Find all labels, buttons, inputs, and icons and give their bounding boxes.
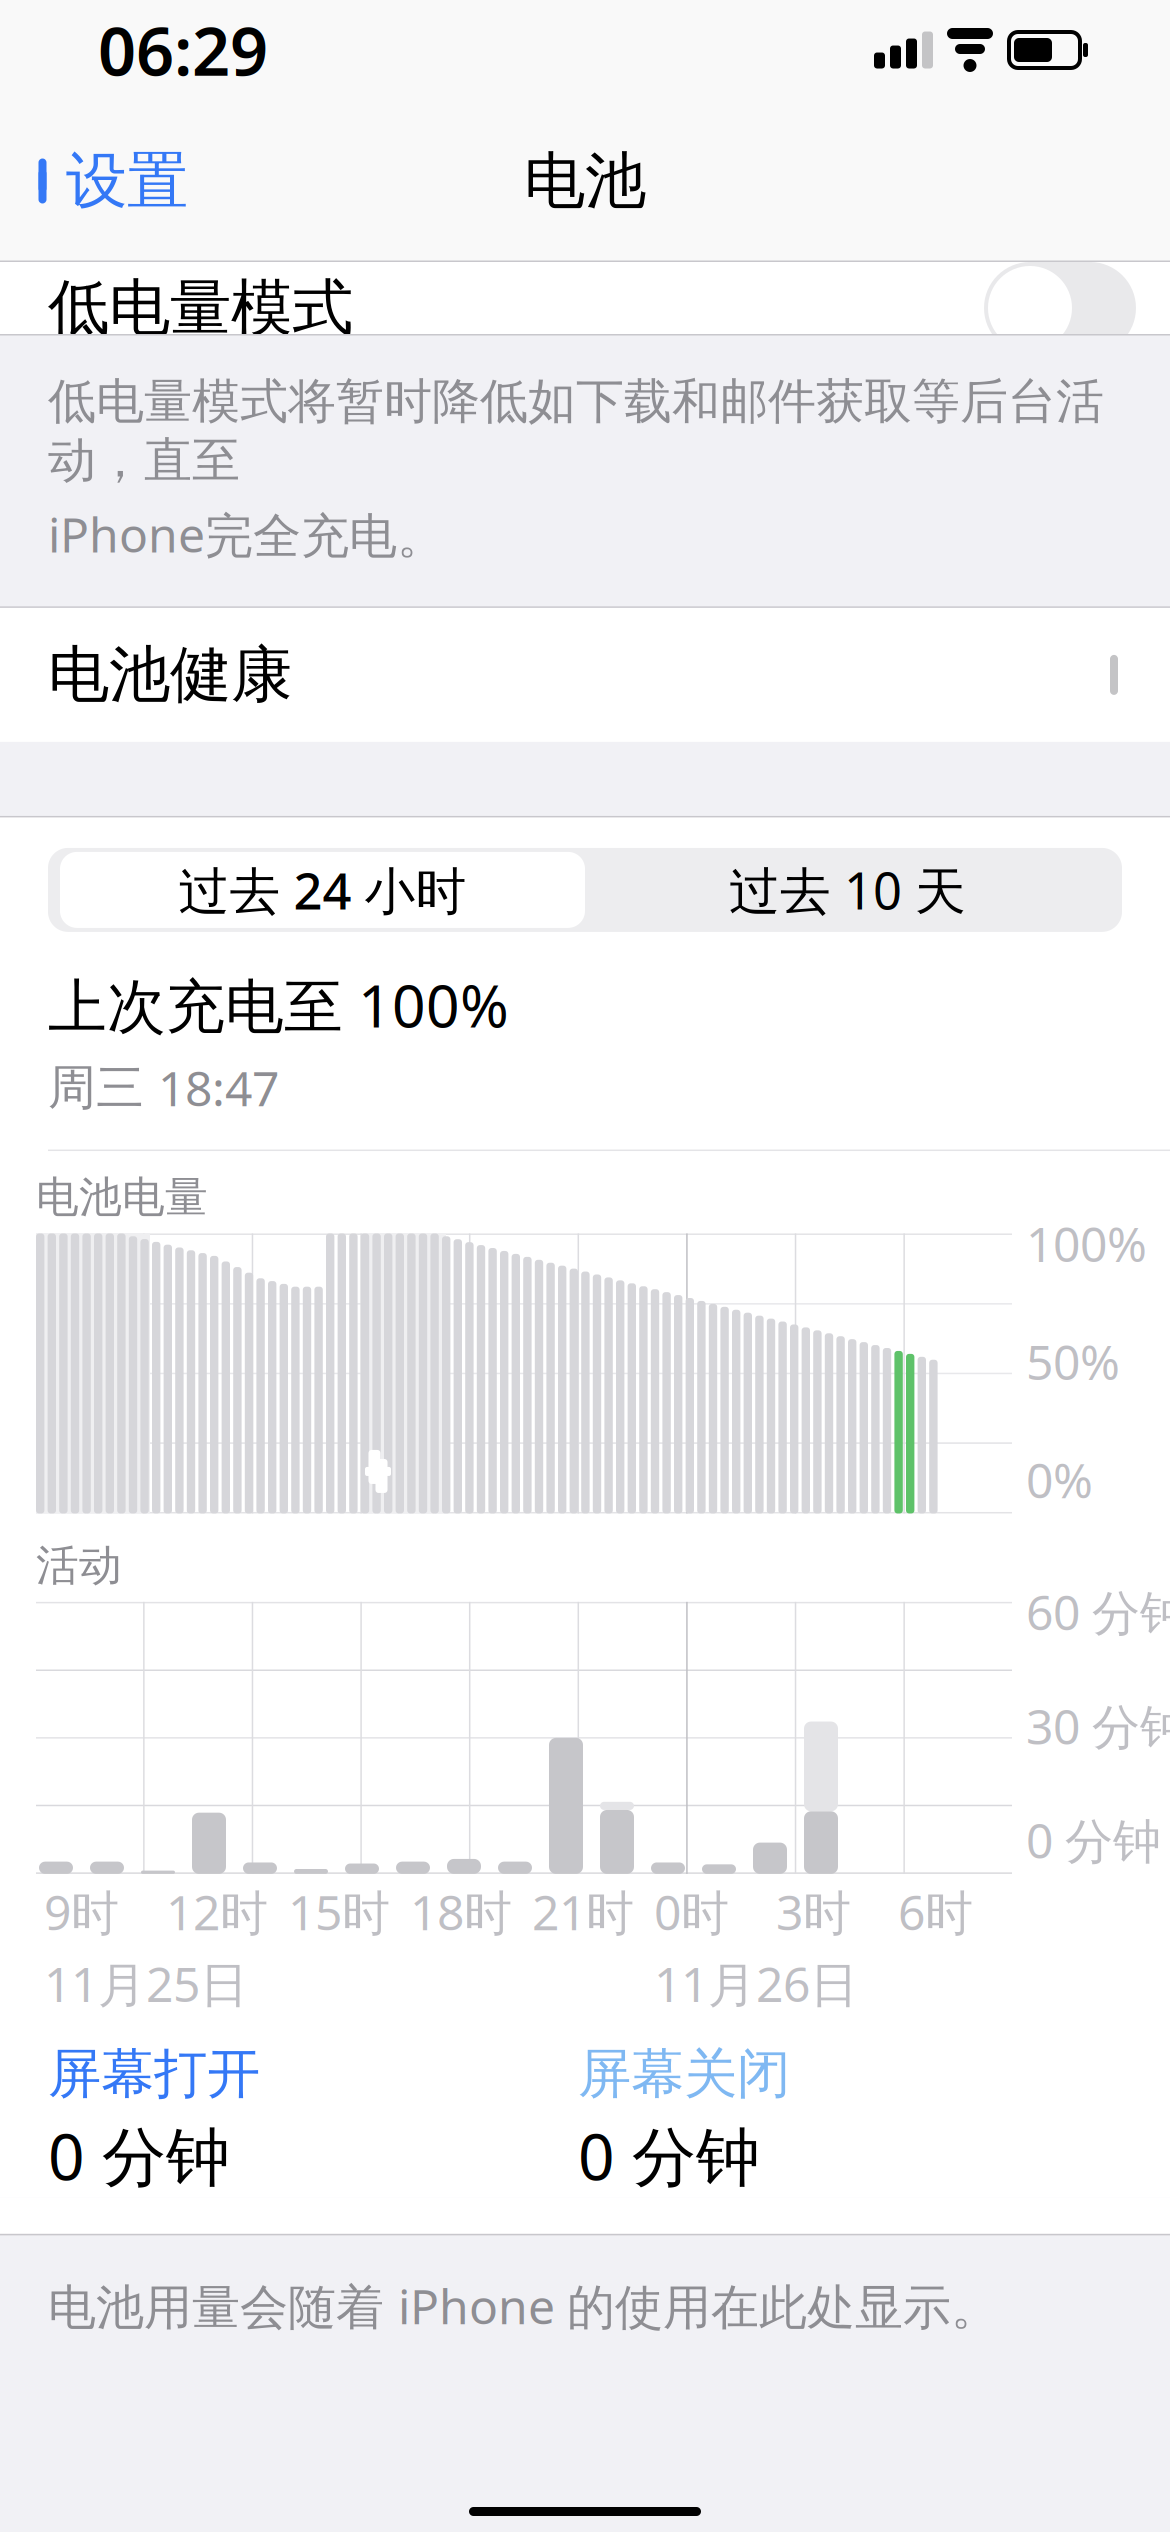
- staticText: 上次充电至 100%: [48, 966, 509, 1044]
- staticText: 屏幕关闭: [578, 2041, 790, 2107]
- staticText: 0时: [654, 1880, 729, 1944]
- staticText: 过去 24 小时: [178, 856, 466, 924]
- staticText: 9时: [44, 1880, 119, 1944]
- staticText: 06:29: [98, 6, 268, 94]
- staticText: iPhone完全充电。: [48, 502, 445, 566]
- staticText: 60 分钟: [1026, 1580, 1170, 1644]
- staticText: 11月25日: [44, 1952, 248, 2015]
- button[interactable]: 低电量模式: [0, 262, 1170, 334]
- staticText: 18:47: [158, 1056, 279, 1119]
- staticText: 屏幕打开: [48, 2041, 260, 2107]
- staticText: 电池电量: [36, 1171, 208, 1223]
- staticText: 21时: [532, 1880, 634, 1944]
- staticText: 0 分钟: [1026, 1808, 1161, 1872]
- staticText: 设置: [66, 143, 188, 219]
- staticText: 12时: [166, 1880, 268, 1944]
- staticText: 电池: [524, 143, 646, 219]
- staticText: 18时: [410, 1880, 512, 1944]
- staticText: 3时: [776, 1880, 851, 1944]
- staticText: 0 分钟: [48, 2113, 230, 2198]
- staticText: 30 分钟: [1026, 1694, 1170, 1758]
- staticText: 50%: [1026, 1330, 1120, 1393]
- button[interactable]: 设置: [0, 123, 188, 239]
- staticText: 过去 10 天: [729, 856, 966, 924]
- staticText: 电池用量会随着 iPhone 的使用在此处显示。: [48, 2274, 999, 2337]
- staticText: 周三: [48, 1058, 144, 1117]
- staticText: 0 分钟: [578, 2113, 760, 2198]
- staticText: 低电量模式: [48, 270, 353, 346]
- button[interactable]: 过去 10 天: [585, 852, 1110, 928]
- staticText: 低电量模式将暂时降低如下载和邮件获取等后台活动，直至: [48, 372, 1104, 490]
- button[interactable]: 过去 24 小时: [60, 852, 585, 928]
- staticText: 0%: [1026, 1448, 1093, 1511]
- staticText: 15时: [288, 1880, 390, 1944]
- staticText: 11月26日: [654, 1952, 858, 2015]
- staticText: 活动: [36, 1539, 122, 1592]
- staticText: 100%: [1026, 1211, 1147, 1275]
- staticText: 6时: [898, 1880, 973, 1944]
- button[interactable]: 电池健康: [0, 608, 1170, 742]
- staticText: 电池健康: [48, 637, 292, 712]
